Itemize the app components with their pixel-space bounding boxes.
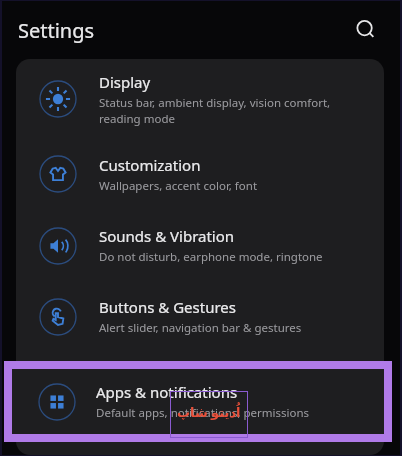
button[interactable]: Sounds & Vibration (16, 210, 384, 281)
staticText: Do not disturb, earphone mode, ringtone (99, 249, 323, 265)
button[interactable]: Display (16, 59, 384, 138)
staticText: Display (99, 72, 151, 92)
staticText: Buttons & Gestures (99, 297, 236, 317)
button[interactable]: Customization (16, 138, 384, 210)
staticText: Wallpapers, accent color, font (99, 178, 258, 194)
button[interactable]: Search (346, 10, 386, 50)
staticText: Apps & notifications (96, 382, 238, 402)
staticText: Alert slider, navigation bar & gestures (99, 320, 302, 336)
staticText: Customization (99, 155, 201, 175)
staticText: Status bar, ambient display, vision comf… (99, 95, 331, 126)
button[interactable]: Apps & notifications (12, 369, 384, 434)
staticText: اُدیتو شاپ (177, 403, 241, 421)
staticText: Sounds & Vibration (99, 226, 235, 246)
staticText: Settings (18, 17, 95, 44)
button[interactable]: Buttons & Gestures (16, 281, 384, 352)
staticText: Default apps, notifications, permissions (96, 405, 310, 421)
